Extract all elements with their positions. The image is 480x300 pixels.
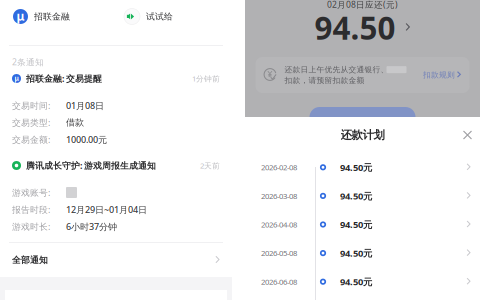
staticText: 2天前: [200, 160, 220, 171]
staticText: 试试给: [146, 11, 173, 22]
staticText: 2026-02-08: [261, 162, 297, 172]
staticText: 还款计划: [340, 128, 384, 142]
button[interactable]: μ: [12, 72, 220, 148]
button[interactable]: 2026-04-08: [245, 210, 480, 239]
staticText: 交易时间:: [12, 99, 50, 111]
button[interactable]: 试试给: [124, 8, 173, 24]
staticText: 2026-03-08: [261, 191, 297, 201]
staticText: 94.50: [315, 6, 396, 49]
staticText: 还款日上午优先从交通银行、: [284, 65, 388, 74]
staticText: 94.50元: [340, 161, 372, 174]
staticText: 6小时37分钟: [66, 220, 117, 233]
staticText: μ: [16, 8, 24, 24]
staticText: 招联金融: [34, 11, 70, 22]
staticText: 2026-04-08: [261, 219, 297, 230]
button[interactable]: 2026-03-08: [245, 182, 480, 210]
staticText: 游戏时长:: [12, 220, 50, 232]
staticText: 2条通知: [12, 56, 44, 68]
staticText: 全部通知: [12, 254, 48, 266]
staticText: 12月29日~01月04日: [66, 203, 147, 216]
staticText: 94.50元: [340, 218, 372, 231]
staticText: 1000.00元: [66, 133, 107, 146]
staticText: 94.50元: [340, 189, 372, 202]
button[interactable]: 扣款规则: [423, 70, 461, 80]
staticText: 2026-05-08: [261, 248, 297, 258]
staticText: 94.50元: [340, 247, 372, 259]
staticText: 94.50元: [340, 275, 372, 288]
staticText: μ: [14, 74, 18, 83]
button[interactable]: 2026-02-08: [245, 153, 480, 182]
staticText: 交易类型:: [12, 116, 50, 128]
staticText: 报告时段:: [12, 203, 50, 215]
button[interactable]: μ: [13, 9, 70, 24]
staticText: 腾讯成长守护: 游戏周报生成通知: [26, 159, 156, 171]
staticText: 2026-06-08: [261, 276, 297, 287]
button[interactable]: 关闭: [463, 130, 472, 139]
staticText: 1分钟前: [192, 73, 220, 84]
staticText: 招联金融: 交易提醒: [26, 72, 102, 84]
button[interactable]: 2026-06-08: [245, 267, 480, 296]
button[interactable]: 全部通知: [0, 243, 232, 277]
staticText: 01月08日: [66, 99, 104, 112]
button[interactable]: 腾讯成长守护: 游戏周报生成通知: [12, 159, 220, 235]
staticText: 扣款，请预留扣款金额: [284, 75, 364, 85]
staticText: 扣款规则: [423, 70, 455, 80]
staticText: 游戏账号:: [12, 186, 50, 198]
button[interactable]: 2026-05-08: [245, 239, 480, 267]
staticText: 借款: [66, 117, 84, 128]
staticText: 02月08日应还(元): [327, 0, 398, 10]
staticText: 交易金额:: [12, 133, 50, 145]
